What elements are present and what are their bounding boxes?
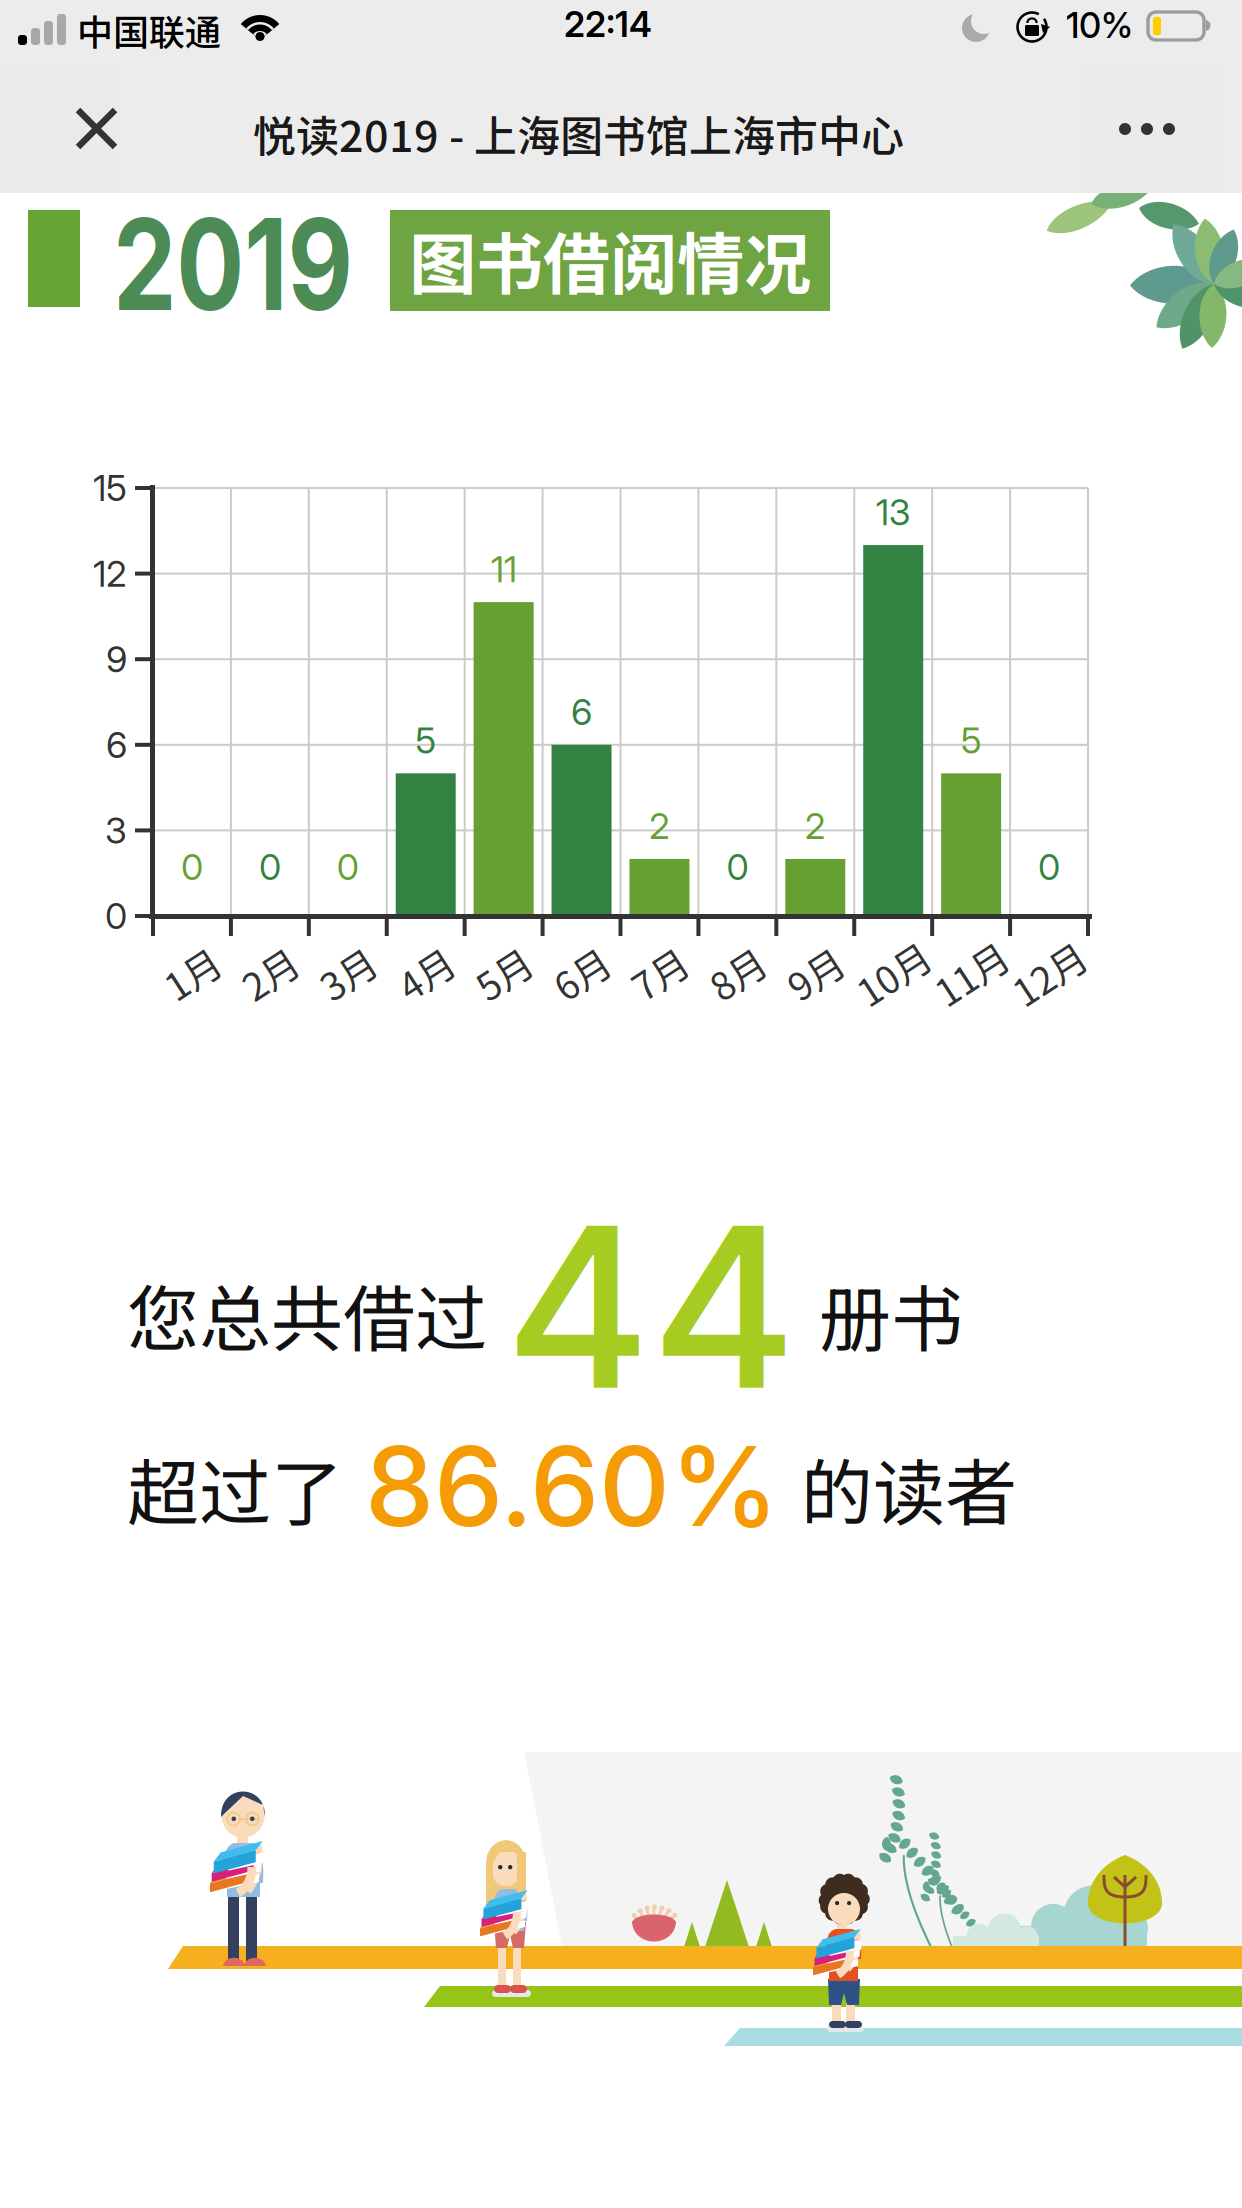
staticText: 10% xyxy=(1066,4,1133,46)
staticText: 悦读2019 - 上海图书馆上海市中心 xyxy=(253,102,904,164)
staticText: 图书借阅情况 xyxy=(409,211,811,308)
staticText: 3 xyxy=(105,809,127,852)
staticText: 12月 xyxy=(1009,945,1089,1000)
staticText: 44 xyxy=(505,1173,797,1441)
staticText: 中国联通 xyxy=(77,4,221,56)
staticText: 0 xyxy=(337,845,359,889)
staticText: 0 xyxy=(1038,845,1060,889)
staticText: 9 xyxy=(106,637,127,681)
staticText: 2 xyxy=(649,804,670,848)
staticText: 7月 xyxy=(630,945,689,1000)
staticText: 6月 xyxy=(552,945,611,1000)
staticText: 6 xyxy=(571,690,592,734)
staticText: 0 xyxy=(181,845,203,889)
staticText: 2 xyxy=(805,804,826,848)
staticText: 8月 xyxy=(708,945,767,1000)
staticText: 的读者 xyxy=(801,1436,1017,1540)
staticText: 6 xyxy=(106,723,127,767)
staticText: 5月 xyxy=(474,945,533,1000)
staticText: 11月 xyxy=(931,945,1011,1000)
staticText: 您总共借过 xyxy=(127,1262,487,1366)
staticText: 3月 xyxy=(318,945,377,1000)
button[interactable]: Close xyxy=(0,64,120,193)
staticText: 册书 xyxy=(819,1262,963,1366)
staticText: 12 xyxy=(93,552,127,595)
staticText: 超过了 xyxy=(127,1436,343,1540)
staticText: 0 xyxy=(726,845,748,889)
staticText: 5 xyxy=(961,719,982,762)
staticText: 2019 xyxy=(113,188,413,340)
staticText: 0 xyxy=(259,845,281,889)
staticText: 9月 xyxy=(786,945,845,1000)
staticText: 2月 xyxy=(240,945,299,1000)
button[interactable]: More xyxy=(1082,64,1222,193)
staticText: 10月 xyxy=(853,945,933,1000)
staticText: 4月 xyxy=(396,945,455,1000)
staticText: 86.60% xyxy=(365,1419,779,1553)
staticText: 1月 xyxy=(162,945,221,1000)
staticText: 5 xyxy=(415,719,436,762)
staticText: 22:14 xyxy=(564,3,652,45)
staticText: 13 xyxy=(876,490,911,534)
staticText: 0 xyxy=(105,894,127,938)
staticText: 15 xyxy=(93,466,127,510)
staticText: 11 xyxy=(491,547,517,591)
